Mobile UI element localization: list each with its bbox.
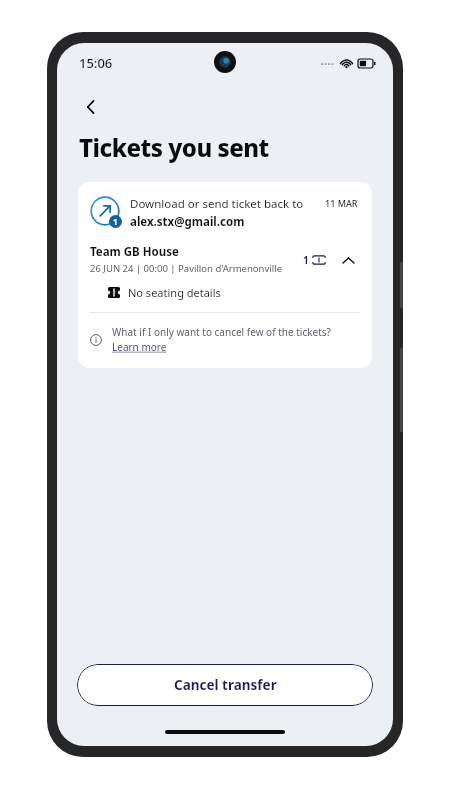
button[interactable]: What if I only want to cancel few of the… — [78, 313, 372, 368]
staticText: Cancel transfer — [174, 676, 277, 694]
staticText: 11 MAR — [325, 197, 358, 209]
staticText: No seating details — [128, 285, 221, 300]
staticText: What if I only want to cancel few of the… — [112, 325, 331, 339]
staticText: 1 — [303, 253, 309, 267]
button[interactable]: Collapse — [338, 250, 358, 270]
button[interactable]: Cancel transfer — [77, 664, 373, 706]
button[interactable]: 1 — [78, 182, 372, 240]
staticText: 1 — [113, 216, 118, 227]
staticText: Learn more — [112, 340, 167, 354]
staticText: 26 JUN 24 | 00:00 | Pavillon d'Armenonvi… — [90, 262, 282, 275]
button[interactable]: Team GB House — [78, 240, 372, 275]
staticText: 15:06 — [79, 54, 113, 72]
staticText: Team GB House — [90, 244, 179, 260]
staticText: alex.stx@gmail.com — [130, 214, 245, 230]
button[interactable]: Back — [71, 87, 111, 127]
staticText: Download or send ticket back to — [130, 196, 304, 212]
staticText: Tickets you sent — [79, 131, 269, 164]
